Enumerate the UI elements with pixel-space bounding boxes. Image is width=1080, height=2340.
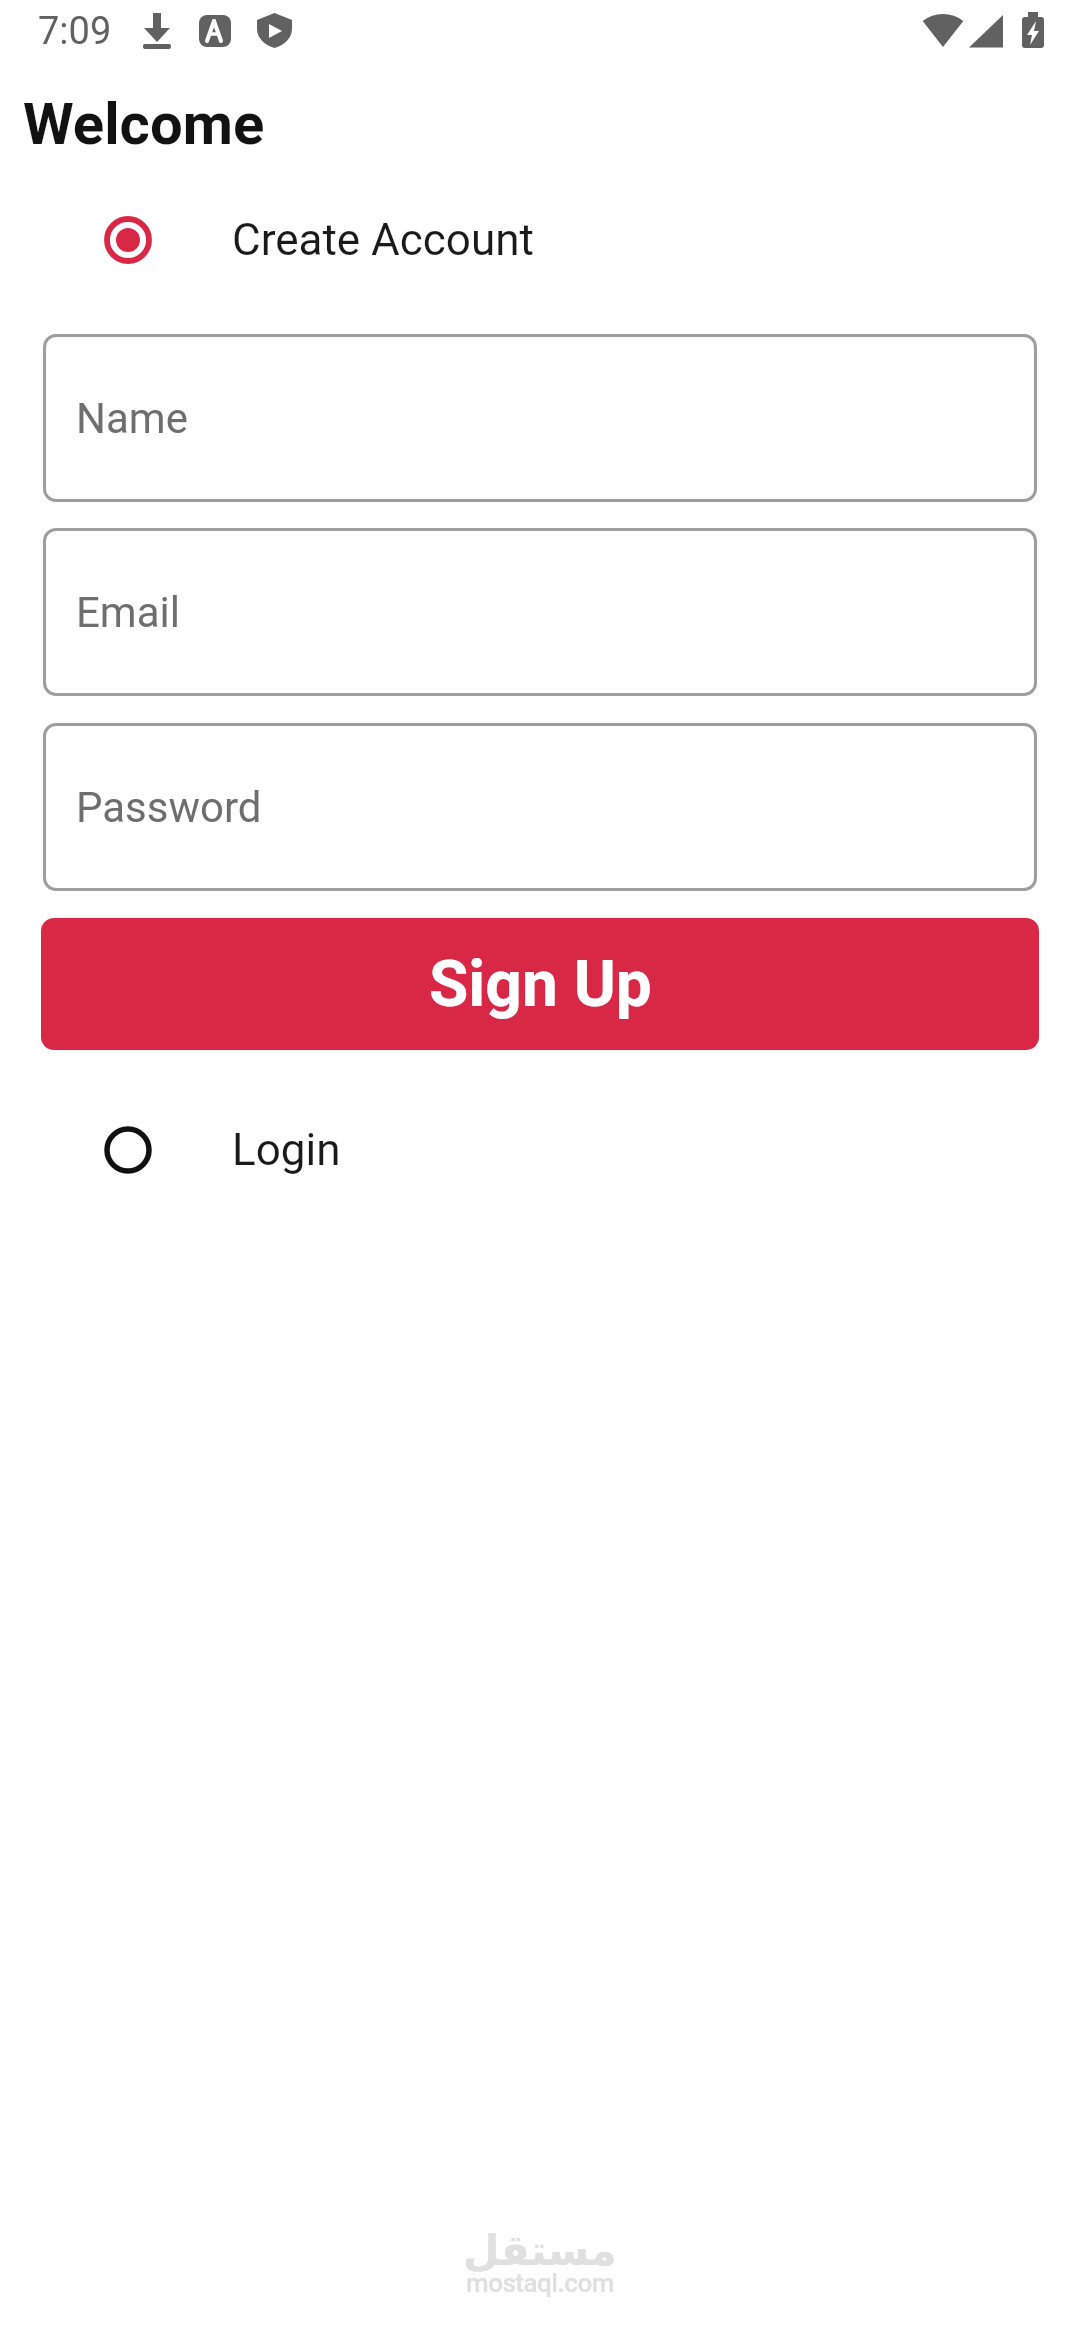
button[interactable]: Name	[43, 334, 1037, 502]
button[interactable]: Password	[43, 723, 1037, 891]
staticText: 7:09	[38, 9, 112, 54]
staticText: Create Account	[232, 214, 534, 266]
staticText: Welcome	[23, 90, 265, 158]
staticText: mostaql.com	[466, 2268, 614, 2298]
staticText: Sign Up	[429, 947, 652, 1022]
button[interactable]: Create Account	[104, 214, 534, 266]
staticText: Name	[76, 394, 188, 443]
staticText: Login	[232, 1124, 341, 1176]
button[interactable]: Sign Up	[41, 918, 1039, 1050]
staticText: مستقل	[463, 2226, 617, 2275]
button[interactable]: Login	[104, 1124, 341, 1176]
staticText: Password	[76, 783, 262, 832]
button[interactable]: Email	[43, 528, 1037, 696]
staticText: Email	[76, 588, 180, 637]
